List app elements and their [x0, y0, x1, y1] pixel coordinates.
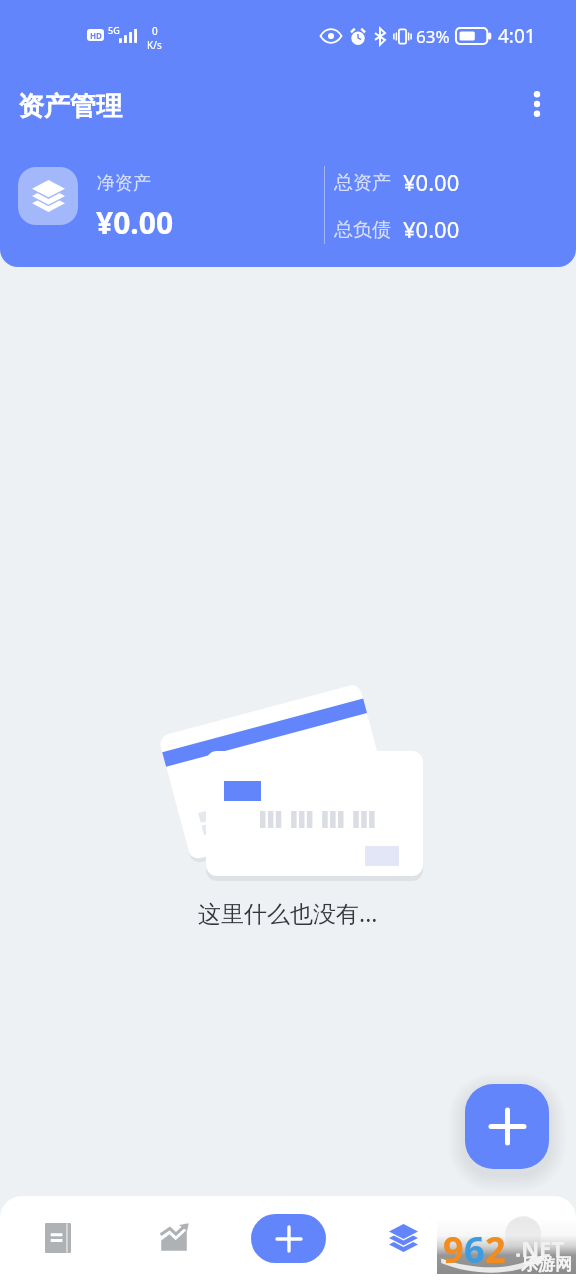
staticText: 0: [152, 24, 158, 38]
button[interactable]: Add record: [251, 1214, 326, 1263]
button[interactable]: Statistics: [116, 1196, 231, 1280]
staticText: K/s: [147, 38, 162, 52]
staticText: ¥0.00: [403, 167, 460, 197]
staticText: 2: [485, 1225, 506, 1274]
button[interactable]: Add: [465, 1084, 549, 1169]
staticText: 净资产: [97, 172, 151, 195]
staticText: 这里什么也没有...: [198, 897, 378, 928]
staticText: .NET: [515, 1233, 565, 1263]
staticText: ¥0.00: [96, 202, 174, 243]
staticText: HD: [90, 30, 102, 41]
staticText: 63%: [416, 25, 450, 48]
staticText: 4:01: [498, 23, 536, 49]
button[interactable]: Assets: [346, 1196, 461, 1280]
staticText: 乐游网: [521, 1254, 572, 1275]
staticText: 9: [443, 1225, 464, 1274]
button[interactable]: Profile: [461, 1196, 576, 1280]
staticText: 总负债: [334, 218, 391, 242]
button[interactable]: More options: [512, 79, 562, 129]
staticText: ¥0.00: [403, 214, 460, 244]
button[interactable]: Ledger: [0, 1196, 116, 1280]
staticText: 6: [464, 1225, 485, 1274]
staticText: 5G: [108, 24, 120, 36]
staticText: 资产管理: [18, 90, 122, 123]
staticText: 总资产: [334, 171, 391, 195]
